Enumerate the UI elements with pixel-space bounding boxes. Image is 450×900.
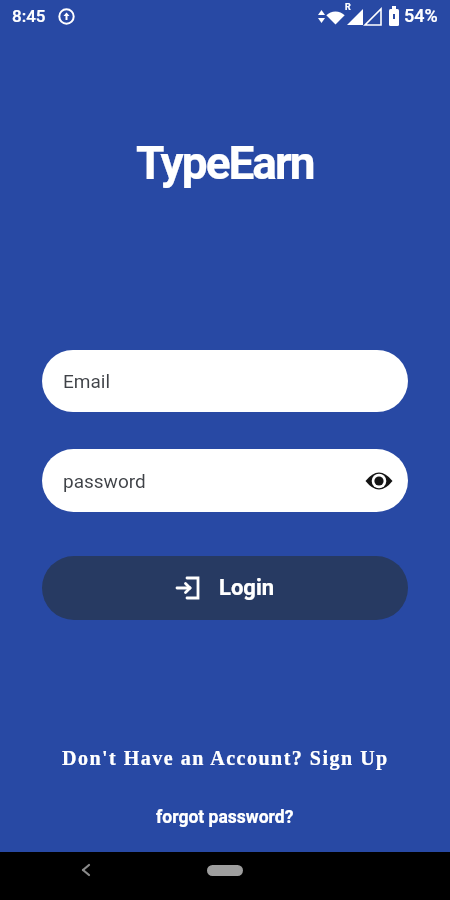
button[interactable]: Don't Have an Account? Sign Up	[0, 740, 450, 776]
button[interactable]: Email	[42, 350, 408, 412]
staticText: 8:45	[12, 6, 46, 26]
staticText: forgot password?	[156, 807, 294, 828]
staticText: TypeEarn	[136, 136, 314, 190]
button[interactable]	[364, 466, 394, 496]
button[interactable]	[72, 856, 100, 884]
staticText: R	[345, 2, 351, 13]
button[interactable]	[207, 865, 243, 876]
button[interactable]: forgot password?	[0, 803, 450, 831]
staticText: password	[63, 470, 146, 492]
button[interactable]: password	[42, 449, 408, 512]
staticText: Login	[219, 575, 275, 601]
button[interactable]: Login	[42, 556, 408, 620]
staticText: Email	[63, 370, 111, 392]
staticText: Don't Have an Account? Sign Up	[62, 747, 389, 769]
staticText: 54%	[404, 5, 438, 26]
